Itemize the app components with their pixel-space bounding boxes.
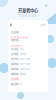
staticText: 证件号码 [10, 57, 18, 61]
staticText: 信用代码 [10, 38, 18, 42]
staticText: 91110108MA [10, 44, 22, 47]
staticText: 法人姓名 [10, 47, 18, 51]
staticText: 证件类型 [10, 52, 18, 56]
staticText: 认证中 [39, 23, 45, 27]
staticText: 2024-05-10 [20, 67, 30, 71]
staticText: 北京星云科技 [10, 36, 28, 39]
staticText: 身份证 [20, 52, 26, 56]
staticText: 企业名称 [10, 30, 18, 34]
staticText: 实名认证信息 [19, 14, 37, 17]
staticText: 开发者中心 [18, 7, 38, 13]
staticText: 1101**1234 [20, 57, 30, 61]
staticText: 138****888 [20, 62, 30, 66]
staticText: 联系电话 [10, 62, 18, 66]
staticText: 张三 [20, 47, 24, 51]
staticText: 申请日期 [10, 67, 18, 71]
staticText: 审核中 [20, 72, 26, 76]
staticText: 无 [20, 82, 22, 86]
staticText: 审核状态 [10, 72, 18, 76]
staticText: 提交审核 [10, 77, 18, 81]
staticText: 备注说明 [10, 82, 18, 86]
